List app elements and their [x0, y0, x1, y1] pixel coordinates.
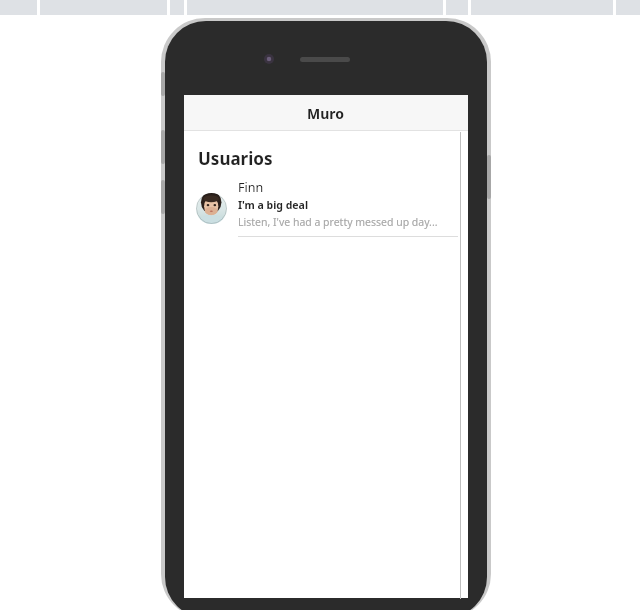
button[interactable]: Muro [184, 95, 468, 131]
button[interactable]: Finn profile photo [196, 179, 458, 237]
staticText: I'm a big deal [238, 198, 309, 212]
staticText: Usuarios [198, 147, 273, 170]
staticText: Listen, I've had a pretty messed up day.… [238, 215, 438, 229]
staticText: Muro [307, 104, 345, 123]
staticText: Finn [238, 179, 264, 196]
button[interactable]: Finn profile photo [196, 193, 227, 224]
